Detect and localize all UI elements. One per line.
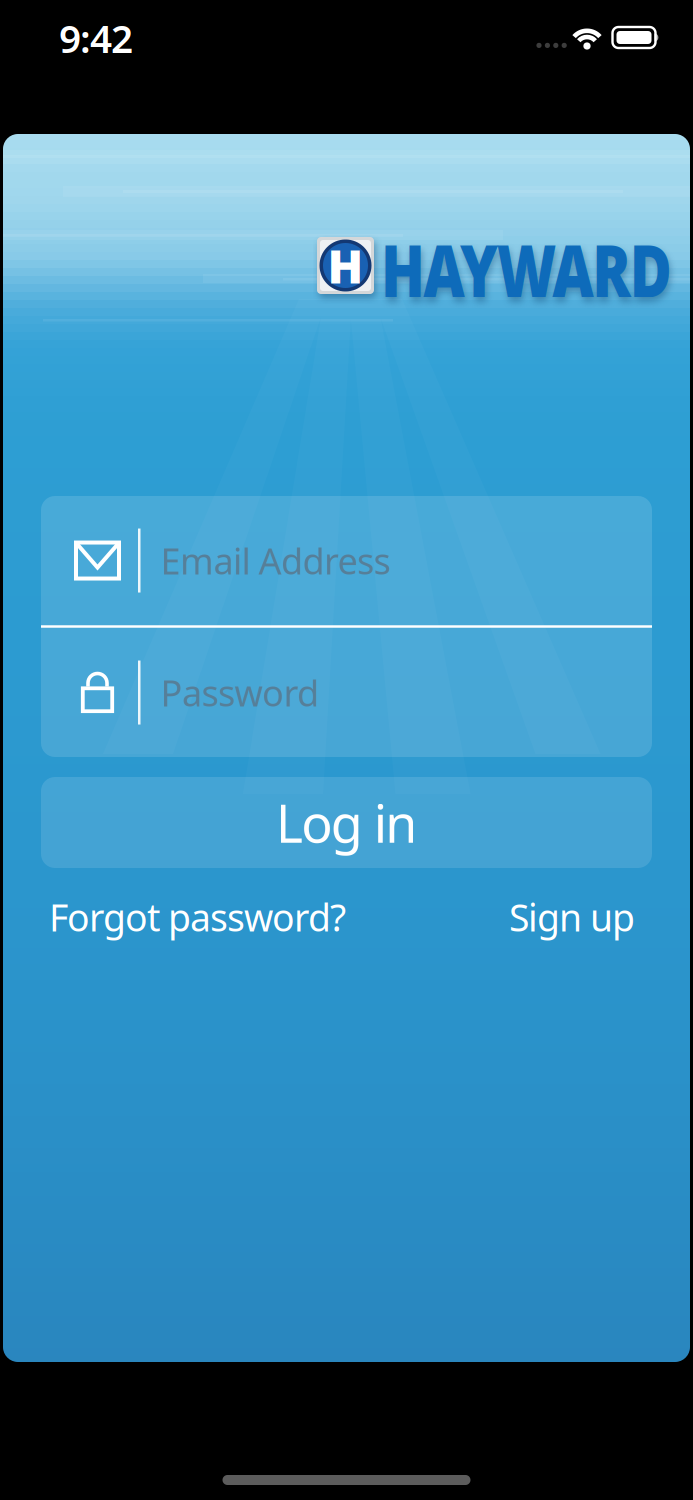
staticText: Email Address [160, 537, 390, 584]
staticText: Log in [276, 788, 417, 857]
staticText: 9:42 [59, 12, 133, 64]
button[interactable]: Sign up [509, 892, 635, 942]
staticText: H [327, 234, 363, 296]
staticText: Sign up [509, 892, 635, 942]
button[interactable]: Log in [41, 777, 652, 868]
button[interactable]: Forgot password? [49, 892, 346, 942]
button[interactable]: Password [41, 628, 652, 757]
staticText: Password [160, 669, 319, 716]
button[interactable]: Email Address [41, 496, 652, 625]
staticText: HAYWARD [340, 220, 693, 318]
staticText: Forgot password? [49, 892, 346, 942]
